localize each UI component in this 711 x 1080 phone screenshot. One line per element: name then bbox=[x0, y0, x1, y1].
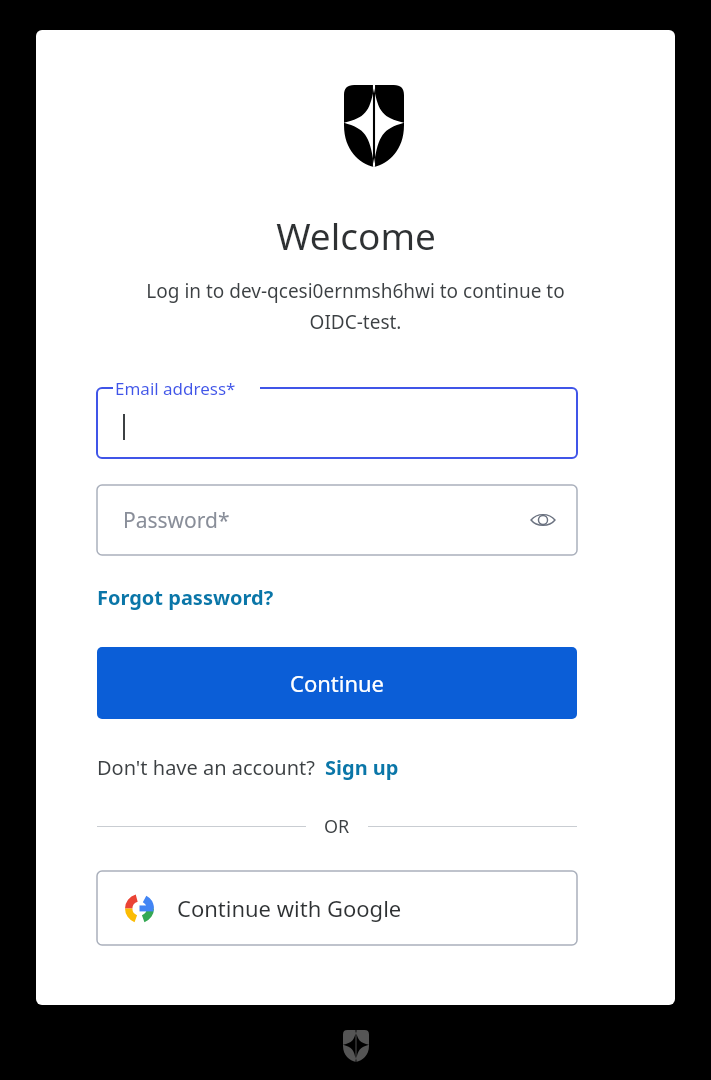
staticText: Sign up bbox=[325, 754, 399, 781]
staticText: Forgot password? bbox=[97, 584, 274, 611]
staticText: Email address* bbox=[115, 377, 236, 400]
staticText: OR bbox=[324, 814, 350, 839]
button[interactable] bbox=[97, 378, 577, 458]
button[interactable]: Continue bbox=[97, 647, 577, 719]
staticText: Don't have an account? bbox=[97, 754, 315, 781]
staticText: Log in to dev-qcesi0ernmsh6hwi to contin… bbox=[146, 278, 565, 334]
staticText: Continue with Google bbox=[177, 893, 402, 923]
button[interactable]: Password* bbox=[97, 485, 577, 555]
button[interactable]: Continue with Google bbox=[97, 871, 577, 945]
staticText: Continue bbox=[290, 668, 385, 698]
staticText: Welcome bbox=[276, 210, 436, 260]
button[interactable]: Sign up bbox=[325, 754, 399, 781]
button[interactable]: Show password bbox=[527, 504, 559, 536]
staticText: Password* bbox=[123, 506, 230, 535]
button[interactable]: Forgot password? bbox=[97, 582, 274, 613]
